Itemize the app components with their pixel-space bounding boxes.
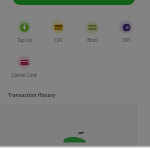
button[interactable]: 3DS (109, 20, 143, 43)
staticText: 3DS (122, 37, 131, 43)
button[interactable]: Bind (75, 20, 109, 43)
button[interactable]: Top Up (7, 20, 41, 43)
staticText: CVV (54, 37, 63, 43)
staticText: Bind (87, 37, 97, 43)
staticText: Cancel Card (11, 72, 37, 78)
button[interactable]: CVV (41, 20, 75, 43)
button[interactable]: Cancel Card (7, 55, 41, 78)
staticText: Top Up (17, 37, 32, 43)
staticText: Transaction History (8, 92, 56, 99)
